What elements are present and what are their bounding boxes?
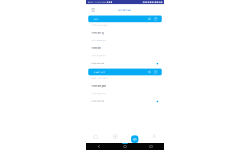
button[interactable]: Show password <box>155 54 160 68</box>
staticText: wavelabs-5g <box>91 31 103 34</box>
staticText: Guest Wifi <box>93 70 104 73</box>
button[interactable]: Edit <box>154 17 158 21</box>
button[interactable]: Home <box>86 130 105 143</box>
button[interactable]: Profile <box>144 130 164 143</box>
staticText: Wifi Settings <box>117 9 130 11</box>
button[interactable]: Search <box>105 130 125 143</box>
staticText: Wifi SSID Name <box>91 24 107 26</box>
button[interactable]: Edit <box>154 70 158 74</box>
button[interactable]: Share <box>147 17 151 21</box>
button[interactable]: Home <box>112 143 138 150</box>
staticText: Wifi Password <box>91 39 105 42</box>
staticText: wavelabs <box>91 46 100 49</box>
staticText: wavelabs-guest <box>91 84 106 87</box>
staticText: Wifi Password <box>91 92 105 95</box>
button[interactable]: Show password <box>155 92 160 106</box>
button[interactable]: Recents <box>138 143 164 150</box>
staticText: WiFi <box>93 17 98 20</box>
button[interactable]: Wifi <box>125 130 144 143</box>
button[interactable]: Menu <box>89 6 97 14</box>
staticText: Guest Wifi name <box>91 77 107 79</box>
button[interactable]: Back <box>86 143 112 150</box>
button[interactable]: Share <box>147 70 151 74</box>
staticText: Wifi Password <box>91 54 105 57</box>
staticText: dineout.co.in/groupon <box>88 1 107 3</box>
